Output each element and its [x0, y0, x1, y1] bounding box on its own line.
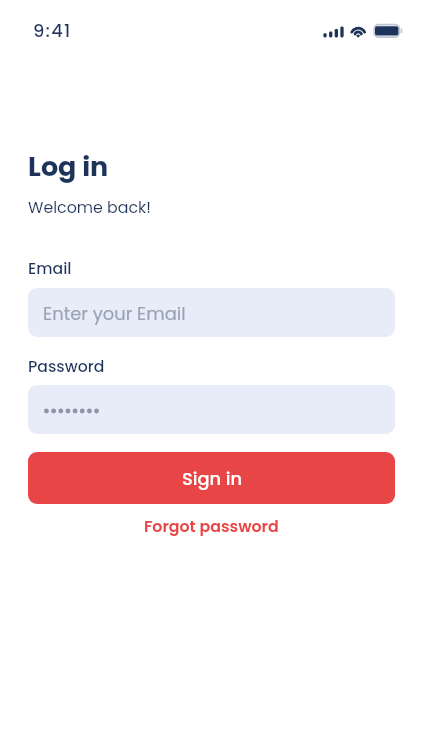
staticText: 9:41 — [33, 18, 72, 43]
staticText: Password — [28, 356, 105, 378]
staticText: Email — [28, 258, 72, 280]
staticText: Log in — [28, 148, 109, 186]
staticText: Welcome back! — [28, 196, 151, 218]
button[interactable]: Forgot password — [130, 509, 293, 543]
staticText: Enter your Email — [43, 301, 186, 326]
staticText: Forgot password — [144, 515, 279, 537]
button[interactable]: Enter your Email — [28, 288, 395, 337]
button[interactable]: Sign in — [28, 452, 395, 504]
button[interactable]: Password input — [28, 385, 395, 434]
staticText: Sign in — [182, 466, 242, 491]
